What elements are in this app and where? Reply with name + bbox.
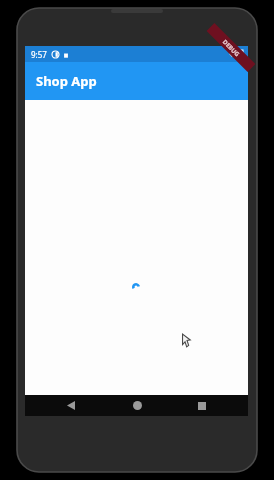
button[interactable]: Recent apps <box>182 395 222 416</box>
staticText: 9:57 <box>31 49 47 60</box>
staticText: DEBUG <box>221 38 241 58</box>
button[interactable]: Home <box>117 395 157 416</box>
staticText: Shop App <box>36 72 97 90</box>
button[interactable]: Back <box>51 395 91 416</box>
